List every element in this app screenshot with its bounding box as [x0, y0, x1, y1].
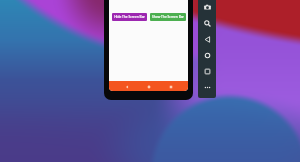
button[interactable]: Back — [122, 82, 131, 91]
button[interactable]: Home — [198, 47, 216, 63]
button[interactable]: Zoom — [198, 15, 216, 31]
button[interactable]: Show The Screen Bar — [150, 13, 186, 21]
button[interactable]: Screenshot — [198, 0, 216, 15]
button[interactable]: Back — [198, 31, 216, 47]
button[interactable]: Home — [144, 82, 153, 91]
staticText: Hide The Screen Bar — [114, 15, 145, 19]
button[interactable]: Overview — [198, 63, 216, 79]
button[interactable]: Hide The Screen Bar — [112, 13, 147, 21]
staticText: Show The Screen Bar — [152, 15, 184, 19]
button[interactable]: More — [198, 79, 216, 95]
button[interactable]: Recents — [166, 82, 175, 91]
